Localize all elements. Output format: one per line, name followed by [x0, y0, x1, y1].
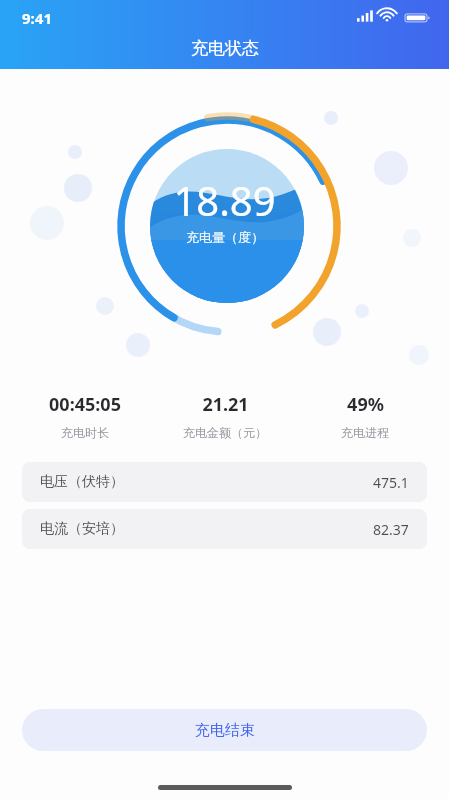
- button[interactable]: 电压（伏特）: [22, 462, 427, 502]
- staticText: 电压（伏特）: [40, 473, 124, 491]
- staticText: 49%: [347, 392, 384, 417]
- staticText: 充电状态: [191, 38, 259, 59]
- staticText: 充电结束: [195, 721, 255, 740]
- staticText: 18.89: [173, 173, 276, 227]
- staticText: 475.1: [373, 473, 409, 492]
- staticText: 充电时长: [61, 425, 109, 440]
- staticText: 电流（安培）: [40, 520, 124, 538]
- staticText: 00:45:05: [49, 392, 121, 417]
- staticText: 82.37: [373, 520, 409, 539]
- staticText: 充电进程: [341, 425, 389, 440]
- button[interactable]: 电流（安培）: [22, 509, 427, 549]
- staticText: 充电量（度）: [186, 229, 264, 245]
- staticText: 充电金额（元）: [183, 425, 267, 440]
- staticText: 21.21: [202, 392, 249, 417]
- staticText: 9:41: [22, 8, 52, 28]
- button[interactable]: 充电结束: [22, 709, 427, 751]
